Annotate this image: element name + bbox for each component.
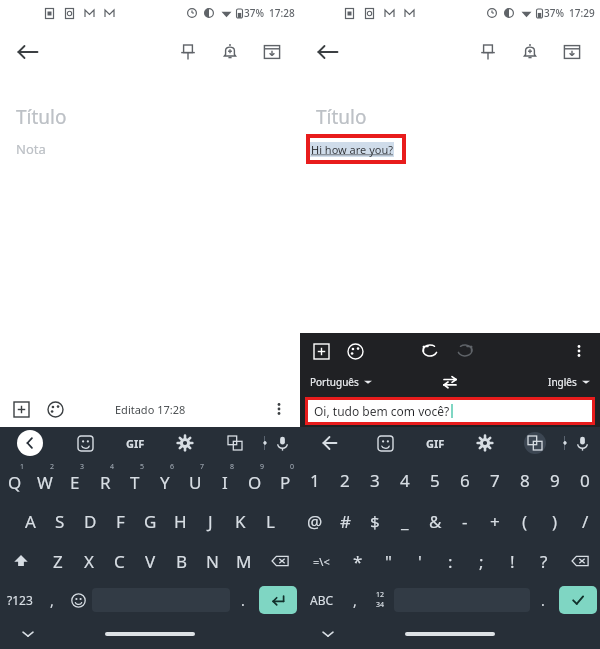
button[interactable]: ; bbox=[466, 541, 497, 581]
button[interactable]: , bbox=[40, 581, 64, 619]
button[interactable]: * bbox=[342, 541, 373, 581]
button[interactable]: ( bbox=[510, 501, 540, 541]
button[interactable]: T bbox=[120, 459, 150, 501]
button[interactable]: Back bbox=[0, 427, 60, 459]
button[interactable]: A bbox=[15, 501, 45, 541]
button[interactable]: I bbox=[210, 459, 240, 501]
button[interactable]: Add bbox=[306, 336, 336, 366]
button[interactable]: W bbox=[30, 459, 60, 501]
button[interactable]: : bbox=[435, 541, 466, 581]
button[interactable]: J bbox=[195, 501, 225, 541]
button[interactable]: Translate bbox=[210, 427, 260, 459]
button[interactable]: D bbox=[75, 501, 105, 541]
button[interactable]: =\< bbox=[300, 541, 342, 581]
button[interactable]: @ bbox=[300, 501, 330, 541]
button[interactable]: $ bbox=[360, 501, 390, 541]
button[interactable]: # bbox=[330, 501, 360, 541]
button[interactable]: ) bbox=[540, 501, 570, 541]
button[interactable]: 12 bbox=[366, 581, 394, 619]
button[interactable]: Redo bbox=[450, 336, 480, 366]
button[interactable]: 1 bbox=[300, 459, 330, 501]
button[interactable]: 7 bbox=[480, 459, 510, 501]
button[interactable]: + bbox=[480, 501, 510, 541]
button[interactable]: More options bbox=[564, 336, 594, 366]
button[interactable]: _ bbox=[390, 501, 420, 541]
button[interactable]: 4 bbox=[390, 459, 420, 501]
button[interactable]: ?123 bbox=[0, 581, 40, 619]
button[interactable]: Reminder bbox=[510, 32, 550, 72]
button[interactable]: GIF bbox=[110, 427, 160, 459]
button[interactable]: / bbox=[570, 501, 600, 541]
button[interactable]: U bbox=[180, 459, 210, 501]
button[interactable]: ! bbox=[497, 541, 528, 581]
button[interactable]: Back bbox=[308, 32, 348, 72]
button[interactable]: Backspace bbox=[259, 541, 300, 581]
button[interactable]: Português bbox=[310, 375, 372, 389]
button[interactable]: M bbox=[228, 541, 259, 581]
button[interactable]: P bbox=[270, 459, 300, 501]
button[interactable]: Voice input bbox=[565, 427, 600, 459]
button[interactable]: X bbox=[73, 541, 104, 581]
button[interactable]: O bbox=[240, 459, 270, 501]
button[interactable]: Palette bbox=[340, 336, 370, 366]
button[interactable]: ABC bbox=[300, 581, 344, 619]
button[interactable]: Confirm bbox=[559, 586, 597, 614]
button[interactable]: 9 bbox=[540, 459, 570, 501]
button[interactable]: E bbox=[60, 459, 90, 501]
button[interactable]: 5 bbox=[420, 459, 450, 501]
button[interactable]: Pin bbox=[168, 32, 208, 72]
button[interactable]: . bbox=[230, 581, 256, 619]
button[interactable]: R bbox=[90, 459, 120, 501]
button[interactable]: K bbox=[225, 501, 255, 541]
button[interactable]: More options bbox=[264, 394, 294, 424]
button[interactable]: GIF bbox=[410, 427, 460, 459]
button[interactable]: Settings bbox=[460, 427, 510, 459]
button[interactable]: & bbox=[420, 501, 450, 541]
button[interactable]: Stickers bbox=[360, 427, 410, 459]
button[interactable]: Swap languages bbox=[437, 369, 463, 395]
button[interactable]: Backspace bbox=[559, 541, 600, 581]
button[interactable]: B bbox=[166, 541, 197, 581]
button[interactable]: Add bbox=[6, 394, 36, 424]
button[interactable]: 8 bbox=[510, 459, 540, 501]
button[interactable]: , bbox=[344, 581, 366, 619]
button[interactable]: L bbox=[255, 501, 285, 541]
button[interactable]: Undo bbox=[415, 336, 445, 366]
button[interactable]: 6 bbox=[450, 459, 480, 501]
button[interactable]: 0 bbox=[570, 459, 600, 501]
button[interactable]: Stickers bbox=[60, 427, 110, 459]
button[interactable]: 2 bbox=[330, 459, 360, 501]
button[interactable]: Shift bbox=[0, 541, 42, 581]
button[interactable]: . bbox=[530, 581, 556, 619]
button[interactable]: Back bbox=[8, 32, 48, 72]
button[interactable]: C bbox=[104, 541, 135, 581]
button[interactable]: Archive bbox=[252, 32, 292, 72]
button[interactable]: ? bbox=[528, 541, 559, 581]
button[interactable]: Translate bbox=[510, 427, 560, 459]
button[interactable]: - bbox=[450, 501, 480, 541]
button[interactable]: 3 bbox=[360, 459, 390, 501]
button[interactable]: Y bbox=[150, 459, 180, 501]
button[interactable]: Back bbox=[300, 427, 360, 459]
button[interactable]: Pin bbox=[468, 32, 508, 72]
button[interactable]: Q bbox=[0, 459, 30, 501]
button[interactable]: Settings bbox=[160, 427, 210, 459]
button[interactable]: ' bbox=[404, 541, 435, 581]
button[interactable]: F bbox=[105, 501, 135, 541]
button[interactable]: V bbox=[135, 541, 166, 581]
button[interactable]: S bbox=[45, 501, 75, 541]
button[interactable]: Z bbox=[42, 541, 73, 581]
button[interactable]: Hide keyboard bbox=[18, 624, 38, 644]
button[interactable]: Archive bbox=[552, 32, 592, 72]
button[interactable]: Emoji bbox=[64, 581, 92, 619]
button[interactable]: Enter bbox=[259, 586, 297, 614]
button[interactable]: H bbox=[165, 501, 195, 541]
button[interactable]: Hide keyboard bbox=[318, 624, 338, 644]
button[interactable]: Voice input bbox=[265, 427, 300, 459]
button[interactable]: " bbox=[373, 541, 404, 581]
button[interactable]: Reminder bbox=[210, 32, 250, 72]
button[interactable]: Palette bbox=[40, 394, 70, 424]
button[interactable]: G bbox=[135, 501, 165, 541]
